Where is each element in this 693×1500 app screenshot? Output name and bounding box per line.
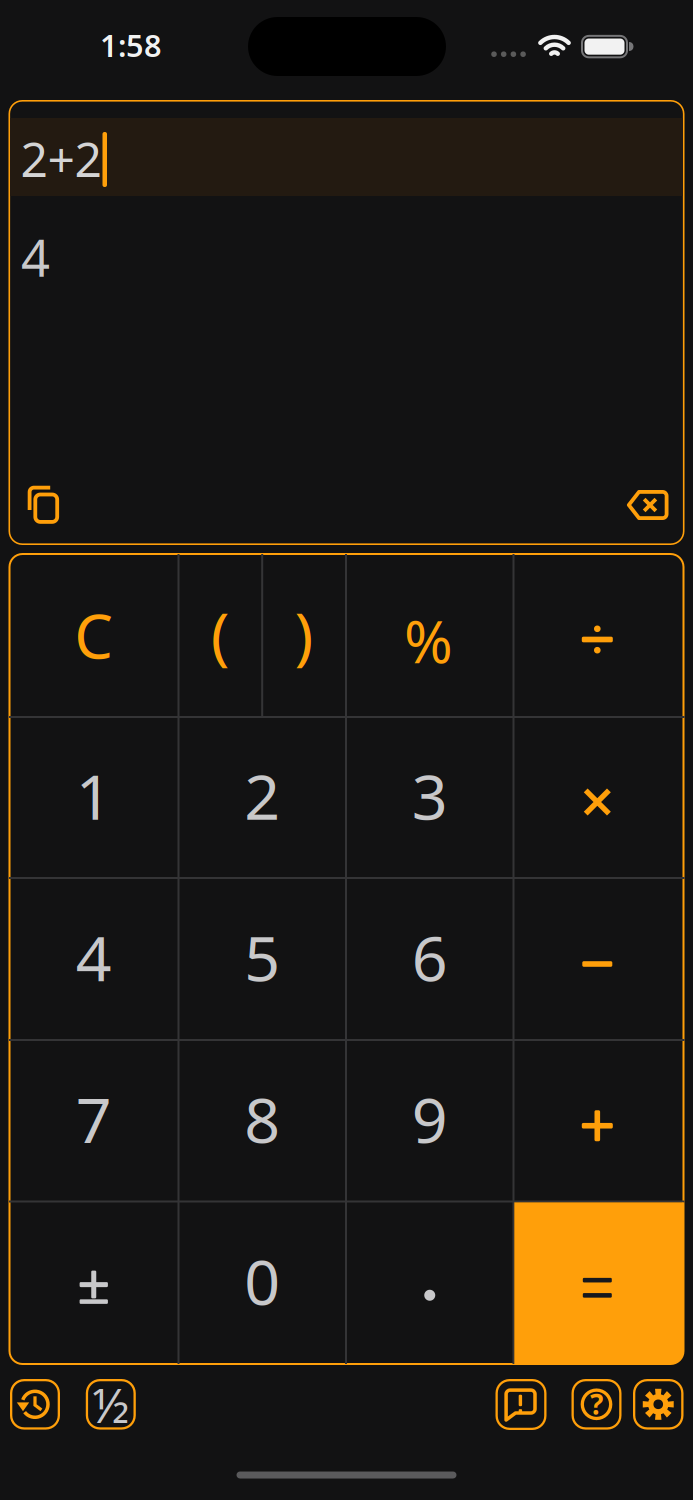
button[interactable]: Subtract: [513, 878, 684, 1040]
staticText: 2: [244, 754, 280, 837]
staticText: 5: [244, 915, 280, 999]
button[interactable]: (: [178, 554, 262, 717]
button[interactable]: Settings: [633, 1379, 683, 1430]
button[interactable]: 5: [178, 878, 346, 1040]
staticText: %: [404, 601, 453, 679]
button[interactable]: Help: [571, 1379, 621, 1430]
staticText: (: [211, 592, 230, 675]
button[interactable]: Fractions: [86, 1379, 136, 1430]
button[interactable]: 1: [9, 717, 178, 878]
staticText: 3: [412, 754, 448, 837]
staticText: C: [74, 594, 113, 676]
button[interactable]: Divide: [513, 554, 684, 717]
button[interactable]: Multiply: [513, 717, 684, 878]
button[interactable]: History: [10, 1379, 60, 1430]
button[interactable]: C: [9, 554, 178, 717]
button[interactable]: 8: [178, 1040, 346, 1201]
staticText: ): [295, 592, 314, 675]
staticText: ½: [92, 1372, 129, 1436]
staticText: 1: [76, 754, 112, 837]
button[interactable]: Feedback: [495, 1379, 546, 1430]
button[interactable]: 6: [346, 878, 513, 1040]
staticText: ?: [590, 1385, 603, 1422]
staticText: 6: [412, 915, 448, 999]
button[interactable]: 2: [178, 717, 346, 878]
button[interactable]: Plus Minus: [9, 1201, 178, 1364]
button[interactable]: Decimal Point: [346, 1201, 513, 1364]
staticText: 4: [76, 915, 112, 999]
staticText: 4: [21, 223, 50, 291]
button[interactable]: ): [262, 554, 346, 717]
staticText: 1:58: [100, 25, 162, 65]
staticText: 7: [76, 1077, 112, 1160]
button[interactable]: 3: [346, 717, 513, 878]
button[interactable]: %: [346, 554, 513, 717]
button[interactable]: Add: [513, 1040, 684, 1201]
staticText: 2+2: [20, 127, 101, 190]
staticText: 9: [412, 1077, 448, 1160]
staticText: 0: [244, 1239, 280, 1322]
button[interactable]: 4: [9, 878, 178, 1040]
staticText: 8: [244, 1077, 280, 1160]
button[interactable]: 9: [346, 1040, 513, 1201]
button[interactable]: Equals: [513, 1201, 684, 1364]
button[interactable]: 0: [178, 1201, 346, 1364]
button[interactable]: 7: [9, 1040, 178, 1201]
